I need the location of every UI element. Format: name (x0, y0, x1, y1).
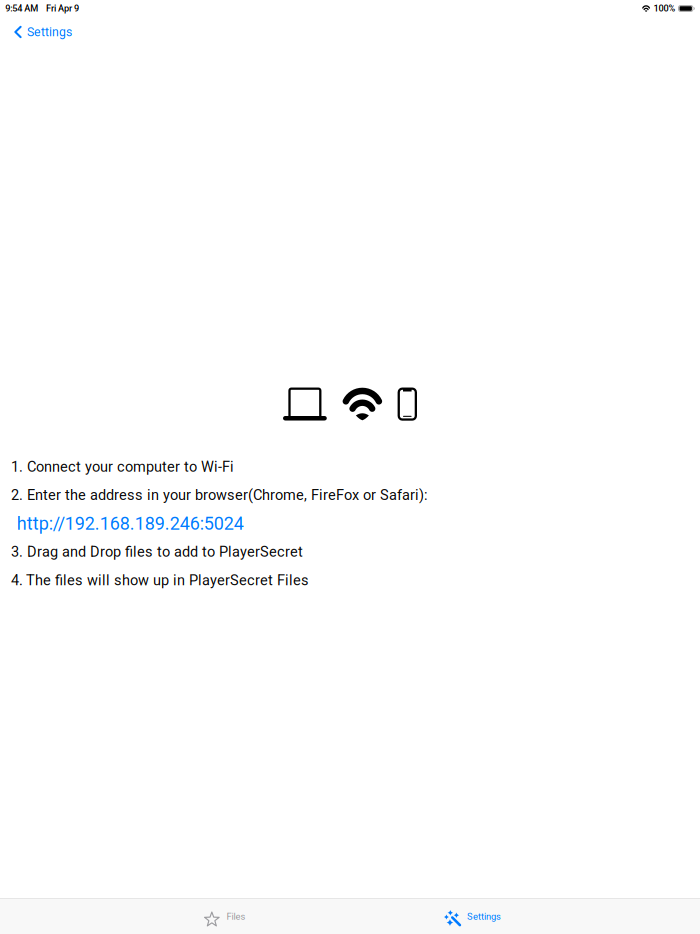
button[interactable]: Settings (0, 14, 84, 47)
button[interactable]: Files (102, 899, 350, 934)
staticText: 1. Connect your computer to Wi-Fi (11, 458, 234, 475)
staticText: Fri Apr 9 (46, 3, 79, 14)
staticText: 3. Drag and Drop files to add to PlayerS… (11, 543, 303, 560)
staticText: 100% (653, 3, 675, 14)
staticText: Settings (27, 25, 72, 39)
staticText: 4. The files will show up in PlayerSecre… (11, 572, 309, 589)
staticText: Files (226, 911, 245, 922)
button[interactable]: Settings (350, 899, 597, 934)
staticText: 2. Enter the address in your browser(Chr… (11, 487, 428, 504)
button[interactable]: http://192.168.189.246:5024 (11, 509, 244, 538)
staticText: 9:54 AM (5, 3, 38, 14)
staticText: Settings (467, 911, 501, 922)
staticText: http://192.168.189.246:5024 (17, 513, 244, 534)
